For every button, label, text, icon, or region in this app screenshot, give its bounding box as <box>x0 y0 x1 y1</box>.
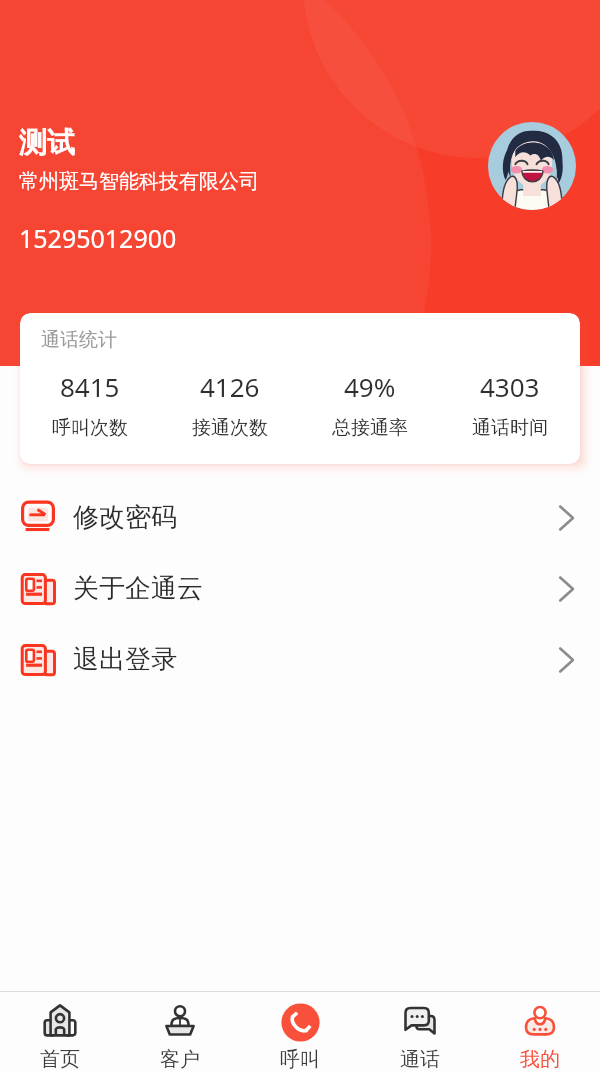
staticText: 8415 <box>60 369 120 404</box>
button[interactable]: 我的 <box>480 992 600 1071</box>
staticText: 首页 <box>40 1047 80 1071</box>
button[interactable]: 退出登录 <box>0 624 600 695</box>
staticText: 4303 <box>480 369 540 404</box>
button[interactable]: 通话 <box>360 992 480 1071</box>
staticText: 接通次数 <box>192 416 268 440</box>
staticText: 呼叫次数 <box>52 416 128 440</box>
staticText: 通话 <box>400 1047 440 1071</box>
staticText: 49% <box>344 369 396 404</box>
staticText: 呼叫 <box>280 1047 320 1071</box>
button[interactable]: 呼叫 <box>240 992 360 1071</box>
staticText: 关于企通云 <box>73 572 203 605</box>
button[interactable]: Avatar <box>488 122 576 210</box>
staticText: 通话时间 <box>472 416 548 440</box>
staticText: 15295012900 <box>19 221 177 255</box>
staticText: 客户 <box>160 1047 200 1071</box>
staticText: 我的 <box>520 1047 560 1071</box>
button[interactable]: 首页 <box>0 992 120 1071</box>
button[interactable]: 修改密码 <box>0 482 600 553</box>
staticText: 修改密码 <box>73 501 177 534</box>
staticText: 测试 <box>19 125 75 160</box>
button[interactable]: 关于企通云 <box>0 553 600 624</box>
staticText: 常州斑马智能科技有限公司 <box>19 169 259 194</box>
staticText: 通话统计 <box>41 328 117 352</box>
staticText: 退出登录 <box>73 643 177 676</box>
staticText: 4126 <box>200 369 260 404</box>
staticText: 总接通率 <box>332 416 408 440</box>
button[interactable]: 客户 <box>120 992 240 1071</box>
